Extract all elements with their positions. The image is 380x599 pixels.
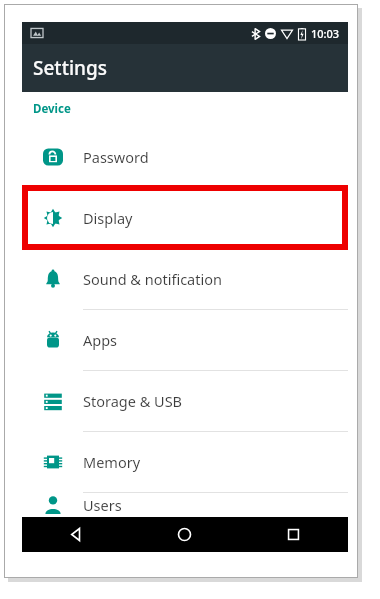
- button[interactable]: Password: [22, 126, 348, 187]
- staticText: Users: [83, 495, 122, 515]
- staticText: Apps: [83, 330, 118, 350]
- staticText: 10:03: [311, 26, 340, 41]
- staticText: Password: [83, 147, 149, 167]
- button[interactable]: Home: [130, 517, 239, 552]
- staticText: Storage & USB: [83, 391, 183, 411]
- staticText: Device: [33, 101, 71, 117]
- button[interactable]: Sound & notification: [22, 248, 348, 309]
- button[interactable]: Display: [22, 187, 348, 248]
- staticText: Memory: [83, 452, 141, 472]
- staticText: Display: [83, 208, 133, 228]
- button[interactable]: Users: [22, 492, 348, 517]
- button[interactable]: Recents: [239, 517, 348, 552]
- staticText: Settings: [33, 55, 107, 81]
- button[interactable]: Back: [22, 517, 130, 552]
- button[interactable]: Memory: [22, 431, 348, 492]
- button[interactable]: Storage & USB: [22, 370, 348, 431]
- button[interactable]: Apps: [22, 309, 348, 370]
- staticText: Sound & notification: [83, 269, 222, 289]
